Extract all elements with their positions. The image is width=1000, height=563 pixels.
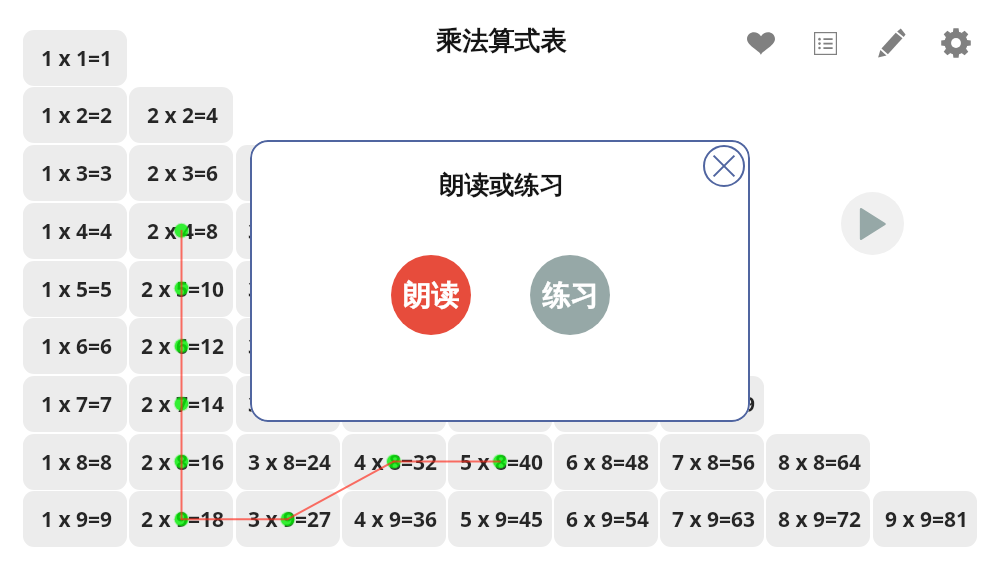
button[interactable]: 7 x 9=63	[660, 491, 764, 547]
staticText: 6 x 8=48	[566, 448, 650, 477]
button[interactable]: 1 x 8=8	[23, 434, 127, 490]
button[interactable]: 4 x 8=32	[342, 434, 446, 490]
staticText: 8 x 9=72	[778, 505, 862, 534]
staticText: 7 x 7=49	[672, 390, 756, 419]
staticText: 7 x 8=56	[672, 448, 756, 477]
button[interactable]: 3 x 6=18	[236, 318, 340, 374]
button[interactable]: Play	[841, 192, 904, 255]
staticText: 4 x 9=36	[354, 505, 438, 534]
staticText: 2 x 5=10	[141, 275, 225, 304]
button[interactable]: 2 x 4=8	[129, 203, 233, 259]
button[interactable]: 6 x 8=48	[554, 434, 658, 490]
button[interactable]: 6 x 9=54	[554, 491, 658, 547]
button[interactable]: 3 x 9=27	[236, 491, 340, 547]
staticText: 8 x 8=64	[778, 448, 862, 477]
button[interactable]: 4 x 6=24	[342, 318, 446, 374]
button[interactable]: 2 x 3=6	[129, 145, 233, 201]
staticText: 朗读或练习	[439, 170, 564, 201]
button[interactable]: 5 x 8=40	[448, 434, 552, 490]
staticText: 2 x 7=14	[141, 390, 225, 419]
staticText: 1 x 4=4	[41, 217, 113, 246]
button[interactable]: 练习	[530, 255, 610, 335]
button[interactable]: 2 x 5=10	[129, 261, 233, 317]
button[interactable]: 3 x 5=15	[236, 261, 340, 317]
staticText: 3 x 9=27	[248, 505, 332, 534]
button[interactable]: 5 x 7=35	[448, 376, 552, 432]
staticText: 3 x 4=12	[248, 217, 332, 246]
staticText: 5 x 5=25	[460, 275, 544, 304]
staticText: 3 x 6=18	[248, 332, 332, 361]
staticText: 1 x 6=6	[41, 332, 113, 361]
button[interactable]: 2 x 6=12	[129, 318, 233, 374]
button[interactable]: 5 x 5=25	[448, 261, 552, 317]
button[interactable]: 8 x 8=64	[766, 434, 870, 490]
staticText: 1 x 7=7	[41, 390, 113, 419]
button[interactable]: 2 x 7=14	[129, 376, 233, 432]
staticText: 1 x 8=8	[41, 448, 113, 477]
button[interactable]: 4 x 4=16	[342, 203, 446, 259]
button[interactable]: 3 x 8=24	[236, 434, 340, 490]
staticText: 1 x 9=9	[41, 505, 113, 534]
button[interactable]: Settings	[939, 26, 973, 60]
staticText: 2 x 9=18	[141, 505, 225, 534]
staticText: 4 x 6=24	[354, 332, 438, 361]
staticText: 1 x 5=5	[41, 275, 113, 304]
staticText: 4 x 5=20	[354, 275, 438, 304]
button[interactable]: 1 x 3=3	[23, 145, 127, 201]
button[interactable]: 6 x 7=42	[554, 376, 658, 432]
staticText: 2 x 4=8	[147, 217, 219, 246]
staticText: 2 x 6=12	[141, 332, 225, 361]
button[interactable]: 7 x 7=49	[660, 376, 764, 432]
staticText: 5 x 9=45	[460, 505, 544, 534]
button[interactable]: 7 x 8=56	[660, 434, 764, 490]
button[interactable]: 1 x 9=9	[23, 491, 127, 547]
button[interactable]: 6 x 6=36	[554, 318, 658, 374]
staticText: 3 x 7=21	[248, 390, 332, 419]
button[interactable]: 4 x 5=20	[342, 261, 446, 317]
staticText: 9 x 9=81	[885, 505, 969, 534]
staticText: 2 x 2=4	[147, 101, 219, 130]
button[interactable]: 1 x 7=7	[23, 376, 127, 432]
button[interactable]: 8 x 9=72	[766, 491, 870, 547]
staticText: 6 x 6=36	[566, 332, 650, 361]
button[interactable]: Edit	[874, 26, 908, 60]
button[interactable]: 5 x 6=30	[448, 318, 552, 374]
button[interactable]: 4 x 9=36	[342, 491, 446, 547]
button[interactable]: 5 x 9=45	[448, 491, 552, 547]
button[interactable]: Favorites	[744, 26, 778, 60]
staticText: 4 x 8=32	[354, 448, 438, 477]
button[interactable]: 3 x 3=9	[236, 145, 340, 201]
button[interactable]: 2 x 8=16	[129, 434, 233, 490]
button[interactable]: 朗读	[391, 255, 471, 335]
staticText: 2 x 3=6	[147, 159, 219, 188]
button[interactable]: 4 x 7=28	[342, 376, 446, 432]
staticText: 1 x 2=2	[41, 101, 113, 130]
staticText: 3 x 8=24	[248, 448, 332, 477]
button[interactable]: Close	[703, 145, 745, 187]
button[interactable]: 1 x 1=1	[23, 30, 127, 86]
button[interactable]: 3 x 7=21	[236, 376, 340, 432]
button[interactable]: 1 x 5=5	[23, 261, 127, 317]
staticText: 朗读	[403, 278, 459, 313]
button[interactable]: 2 x 9=18	[129, 491, 233, 547]
button[interactable]: 9 x 9=81	[873, 491, 977, 547]
button[interactable]: 1 x 2=2	[23, 87, 127, 143]
staticText: 6 x 9=54	[566, 505, 650, 534]
button[interactable]: 2 x 2=4	[129, 87, 233, 143]
staticText: 练习	[542, 278, 598, 313]
staticText: 5 x 8=40	[460, 448, 544, 477]
button[interactable]: 1 x 6=6	[23, 318, 127, 374]
staticText: 1 x 1=1	[41, 44, 113, 73]
staticText: 1 x 3=3	[41, 159, 113, 188]
button[interactable]: Formula list	[808, 26, 842, 60]
button[interactable]: 3 x 4=12	[236, 203, 340, 259]
button[interactable]: 1 x 4=4	[23, 203, 127, 259]
staticText: 7 x 9=63	[672, 505, 756, 534]
staticText: 3 x 5=15	[248, 275, 332, 304]
